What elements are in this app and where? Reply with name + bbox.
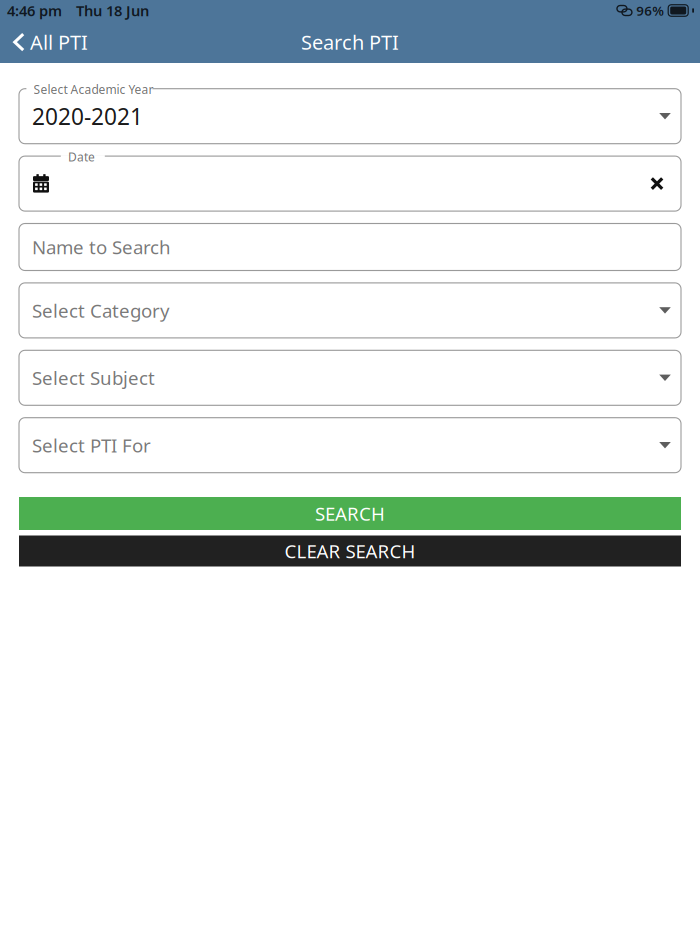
button[interactable]: Date [19,148,681,211]
staticText: Name to Search [32,235,171,259]
button[interactable]: All PTI [0,21,98,63]
button[interactable]: Name to Search [19,215,681,270]
button[interactable]: Select Subject [19,342,681,405]
button[interactable]: Select PTI For [19,410,681,473]
staticText: All PTI [30,29,88,55]
staticText: Search PTI [301,29,399,55]
staticText: 2020-2021 [32,101,143,131]
button[interactable]: 2020-2021 [19,81,681,144]
staticText: Thu 18 Jun [76,1,149,20]
staticText: Select PTI For [32,433,151,458]
staticText: Select Subject [32,365,155,390]
staticText: Date [68,149,95,165]
staticText: SEARCH [315,501,385,526]
button[interactable]: CLEAR SEARCH [19,535,681,566]
staticText: CLEAR SEARCH [284,539,415,563]
staticText: 96% [636,2,664,19]
button[interactable]: Select Category [19,275,681,338]
button[interactable]: SEARCH [19,497,681,530]
staticText: Select Academic Year [34,81,154,97]
staticText: Select Category [32,298,170,323]
staticText: 4:46 pm [7,1,62,20]
